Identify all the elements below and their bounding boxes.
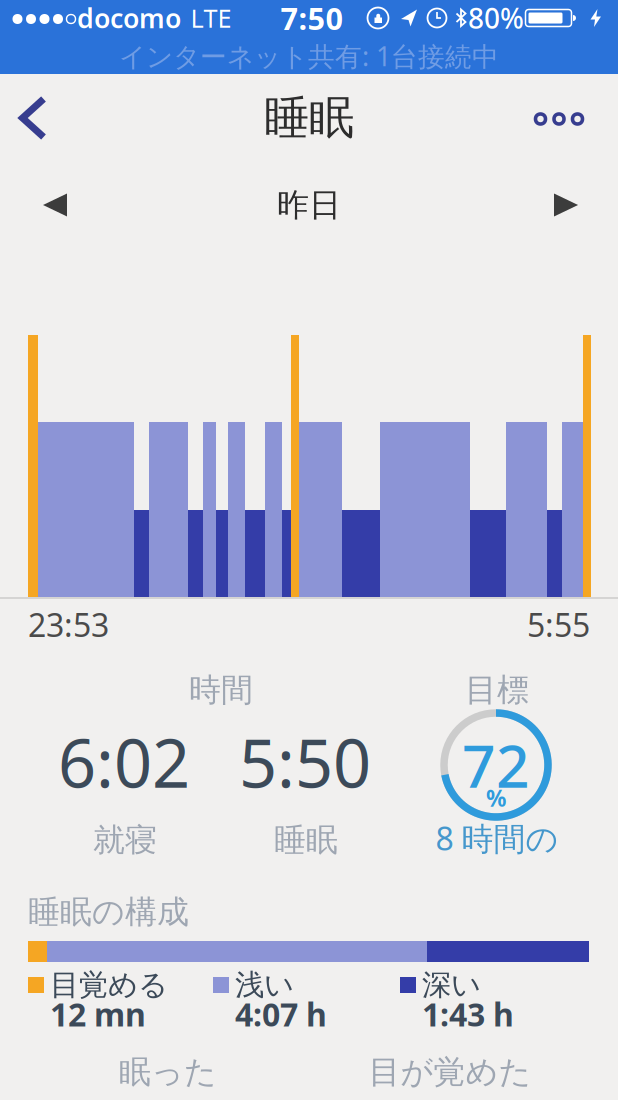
- button[interactable]: Previous day: [29, 179, 81, 230]
- staticText: 5:50: [239, 718, 371, 806]
- staticText: インターネット共有: 1台接続中: [119, 38, 499, 74]
- staticText: 1:43 h: [422, 993, 514, 1035]
- staticText: 6:02: [58, 718, 190, 806]
- button[interactable]: More: [519, 89, 599, 149]
- staticText: 眠った: [119, 1052, 217, 1092]
- staticText: 4:07 h: [235, 993, 327, 1035]
- staticText: 23:53: [28, 603, 109, 646]
- staticText: 就寝: [93, 820, 157, 860]
- staticText: 目標: [465, 670, 529, 710]
- button[interactable]: Next day: [540, 179, 592, 230]
- staticText: LTE: [190, 1, 231, 35]
- staticText: 72: [462, 726, 530, 804]
- staticText: 深い: [422, 967, 481, 1003]
- staticText: 7:50: [280, 0, 343, 38]
- staticText: 8 時間の: [435, 817, 558, 859]
- staticText: 睡眠の構成: [28, 892, 189, 932]
- staticText: 5:55: [527, 603, 590, 646]
- staticText: 時間: [189, 670, 253, 710]
- staticText: 昨日: [277, 185, 341, 225]
- staticText: 睡眠: [274, 820, 338, 860]
- staticText: 睡眠: [264, 90, 354, 146]
- staticText: docomo: [77, 0, 181, 36]
- button[interactable]: Back: [3, 83, 63, 153]
- staticText: 12 mn: [50, 993, 146, 1035]
- staticText: 目覚める: [50, 967, 168, 1003]
- staticText: 浅い: [235, 967, 294, 1003]
- staticText: %: [486, 783, 506, 813]
- staticText: 80%: [468, 0, 524, 37]
- staticText: 目が覚めた: [368, 1052, 531, 1092]
